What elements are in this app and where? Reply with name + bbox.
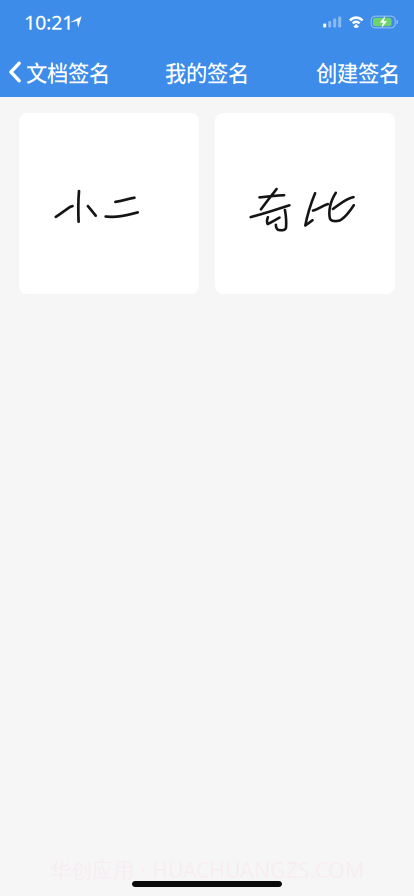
button[interactable]: 创建签名 xyxy=(306,50,414,94)
button[interactable] xyxy=(19,113,199,294)
staticText: 10:21 xyxy=(24,9,73,35)
staticText: 文档签名 xyxy=(26,57,110,87)
button[interactable]: 文档签名 xyxy=(0,50,118,94)
staticText: 创建签名 xyxy=(316,57,400,87)
button[interactable] xyxy=(215,113,395,294)
staticText: 我的签名 xyxy=(165,57,249,87)
staticText: 华创应用 · HUACHUANGZS.COM xyxy=(50,856,364,884)
